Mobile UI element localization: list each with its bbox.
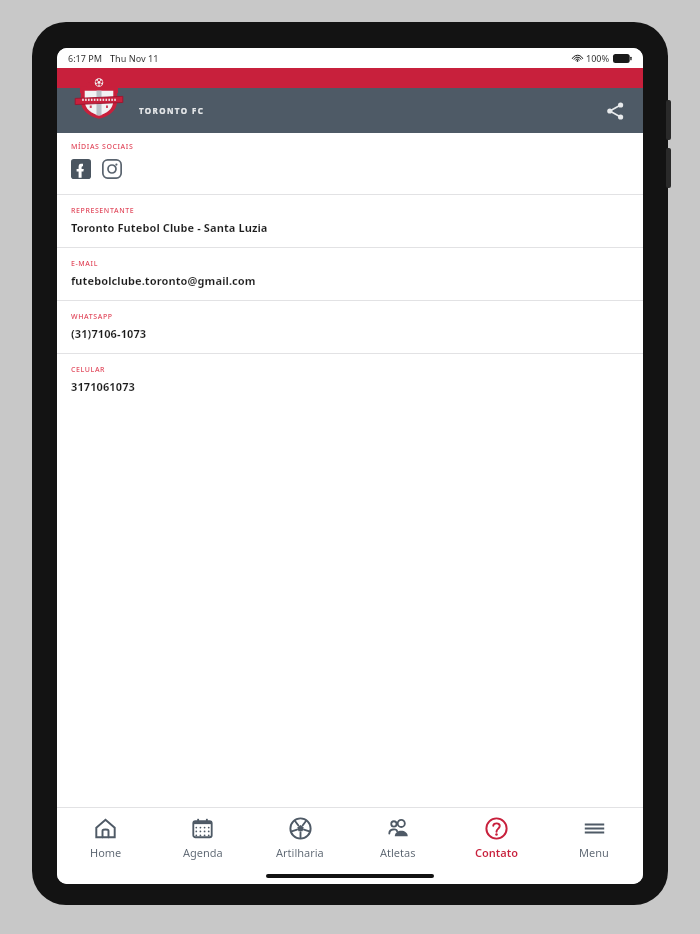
button[interactable]: Instagram	[102, 159, 122, 179]
button[interactable]: Facebook	[71, 159, 91, 179]
button[interactable]: Contato	[447, 808, 545, 868]
staticText: Artilharia	[276, 845, 324, 860]
button[interactable]: Share	[601, 97, 629, 125]
button[interactable]: Agenda	[154, 808, 251, 868]
staticText: (31)7106-1073	[71, 326, 147, 341]
staticText: Agenda	[183, 845, 223, 860]
staticText: MÍDIAS SOCIAIS	[71, 142, 134, 152]
staticText: CELULAR	[71, 365, 106, 375]
button[interactable]: Artilharia	[251, 808, 349, 868]
staticText: Home	[90, 845, 122, 860]
staticText: futebolclube.toronto@gmail.com	[71, 273, 256, 288]
staticText: 6:17 PM	[68, 52, 102, 64]
button[interactable]: CELULAR	[57, 354, 643, 406]
staticText: E-MAIL	[71, 259, 98, 269]
staticText: Thu Nov 11	[110, 52, 159, 64]
staticText: 100%	[586, 52, 610, 64]
staticText: Toronto Futebol Clube - Santa Luzia	[71, 220, 268, 235]
staticText: Menu	[579, 845, 609, 860]
staticText: WHATSAPP	[71, 312, 113, 322]
staticText: Atletas	[380, 845, 416, 860]
staticText: REPRESENTANTE	[71, 206, 135, 216]
button[interactable]: Atletas	[349, 808, 447, 868]
button[interactable]: Menu	[545, 808, 643, 868]
staticText: Contato	[475, 845, 518, 860]
staticText: 3171061073	[71, 379, 135, 394]
staticText: TORONTO FC	[139, 105, 205, 116]
button[interactable]: Home	[57, 808, 154, 868]
button[interactable]: REPRESENTANTE	[57, 195, 643, 247]
button[interactable]: E-MAIL	[57, 248, 643, 300]
button[interactable]: WHATSAPP	[57, 301, 643, 353]
